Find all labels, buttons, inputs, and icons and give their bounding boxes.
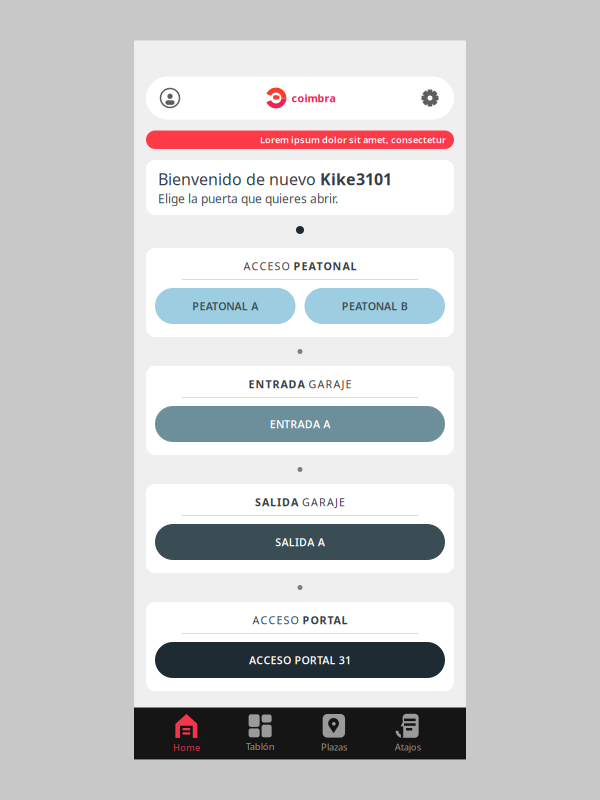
staticText: ENTRADA	[248, 377, 304, 391]
staticText: SALIDA	[255, 495, 298, 509]
staticText: Plazas	[321, 741, 347, 753]
button[interactable]: SALIDA A	[155, 524, 445, 560]
staticText: PEATONAL A	[192, 299, 258, 313]
staticText: ENTRADA A	[270, 417, 330, 431]
staticText: Bienvenido de nuevo	[158, 168, 320, 190]
staticText: PEATONAL B	[342, 299, 408, 313]
button[interactable]: ACCESO PORTAL 31	[155, 642, 445, 678]
staticText: Elige la puerta que quieres abrir.	[158, 191, 338, 207]
staticText: GARAJE	[308, 377, 351, 391]
button[interactable]: Home	[149, 707, 223, 759]
button[interactable]: ENTRADA A	[155, 406, 445, 442]
staticText: PORTAL	[302, 613, 347, 627]
staticText: ACCESO	[243, 259, 289, 273]
staticText: ACCESO PORTAL 31	[249, 653, 351, 667]
staticText: PEATONAL	[293, 259, 356, 273]
button[interactable]: PEATONAL A	[155, 288, 295, 324]
button[interactable]: Profile	[146, 76, 194, 119]
staticText: ACCESO	[252, 613, 298, 627]
staticText: GARAJE	[302, 495, 345, 509]
button[interactable]: Tablón	[223, 707, 297, 759]
button[interactable]: Settings	[406, 76, 454, 119]
staticText: Tablón	[246, 740, 275, 753]
staticText: Atajos	[395, 741, 421, 753]
button[interactable]: Plazas	[297, 707, 371, 759]
staticText: coimbra	[291, 91, 335, 105]
staticText: Home	[173, 741, 200, 754]
button[interactable]: PEATONAL B	[304, 288, 445, 324]
staticText: Kike3101	[320, 168, 392, 190]
staticText: Lorem ipsum dolor sit amet, consectetur	[260, 134, 446, 146]
staticText: SALIDA A	[275, 535, 325, 549]
button[interactable]: Atajos	[371, 707, 445, 759]
